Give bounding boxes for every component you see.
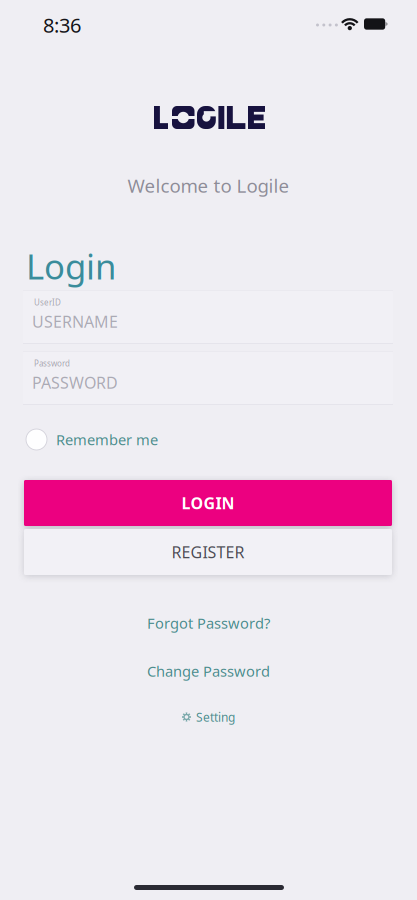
staticText: UserID [34, 297, 61, 308]
staticText: Remember me [56, 430, 158, 449]
button[interactable]: Change Password [147, 661, 270, 681]
staticText: LOGIN [181, 492, 234, 514]
button[interactable]: LOGIN [24, 480, 392, 526]
button[interactable]: Setting [182, 709, 235, 725]
staticText: Password [34, 358, 70, 369]
staticText: REGISTER [171, 541, 244, 563]
staticText: Welcome to Logile [127, 173, 289, 198]
staticText: Change Password [147, 661, 270, 681]
button[interactable]: Forgot Password? [147, 613, 270, 633]
button[interactable]: REGISTER [24, 529, 392, 575]
staticText: Forgot Password? [147, 613, 270, 633]
staticText: Setting [196, 709, 235, 725]
button[interactable]: Remember me [26, 429, 246, 450]
staticText: 8:36 [43, 12, 81, 38]
staticText: USERNAME [32, 311, 118, 332]
staticText: PASSWORD [32, 372, 118, 393]
staticText: Login [26, 243, 116, 289]
